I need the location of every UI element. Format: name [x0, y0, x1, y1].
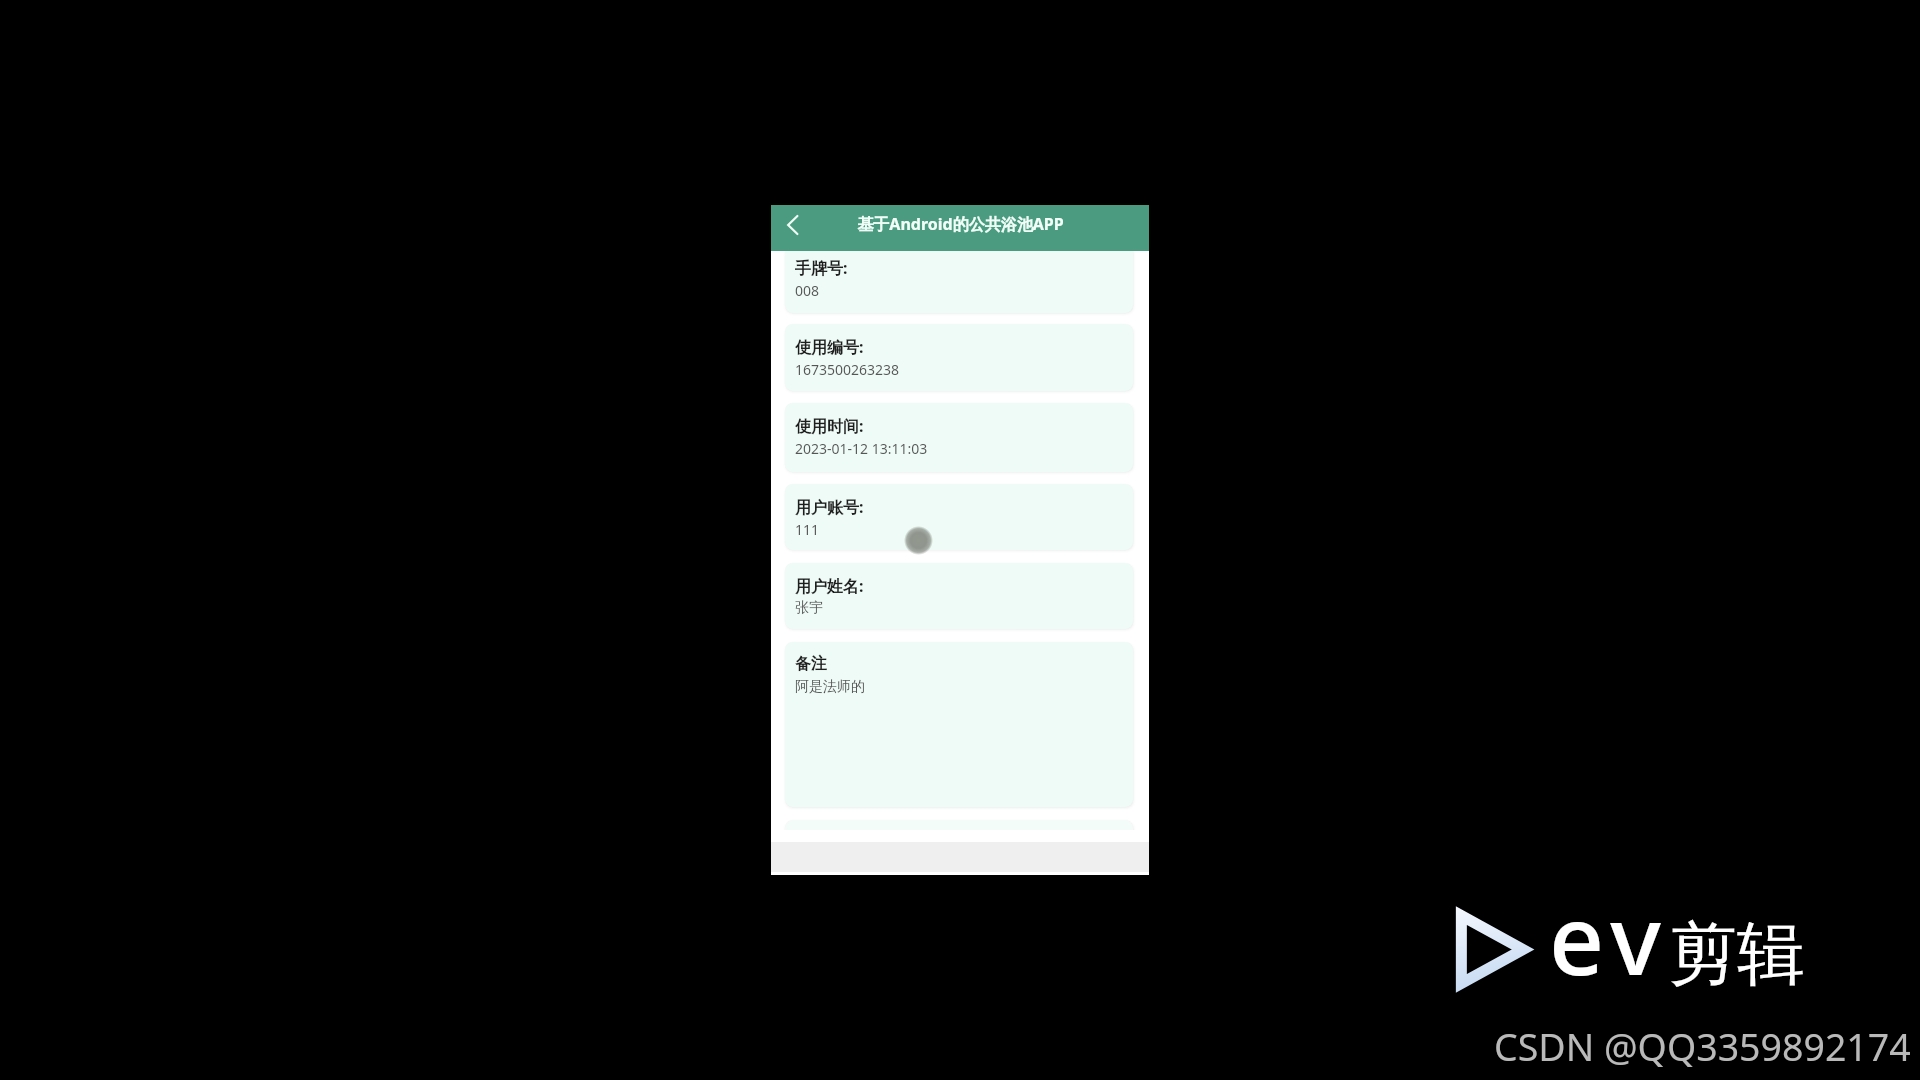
staticText: 剪辑: [1669, 912, 1805, 998]
staticText: 008: [795, 281, 820, 300]
staticText: CSDN @QQ3359892174: [1494, 1021, 1911, 1072]
staticText: 阿是法师的: [795, 678, 865, 696]
button[interactable]: Back: [771, 205, 815, 251]
button[interactable]: 使用编号:: [785, 324, 1133, 391]
staticText: 使用编号:: [795, 336, 864, 358]
staticText: 2023-01-12 13:11:03: [795, 439, 928, 458]
staticText: 基于Android的公共浴池APP: [857, 213, 1064, 235]
button[interactable]: 用户姓名:: [785, 563, 1133, 629]
staticText: 111: [795, 520, 820, 539]
staticText: 张宇: [795, 599, 823, 617]
staticText: ev: [1549, 872, 1669, 1003]
staticText: 手牌号:: [795, 257, 848, 279]
staticText: 1673500263238: [795, 360, 900, 379]
staticText: 使用时间:: [795, 415, 864, 437]
button[interactable]: 使用时间:: [785, 403, 1133, 472]
button[interactable]: 手牌号:: [785, 251, 1133, 313]
staticText: 备注: [795, 654, 827, 674]
button[interactable]: 用户账号:: [785, 484, 1133, 550]
button[interactable]: 备注: [785, 642, 1133, 807]
staticText: 用户姓名:: [795, 575, 864, 597]
staticText: 用户账号:: [795, 496, 864, 518]
